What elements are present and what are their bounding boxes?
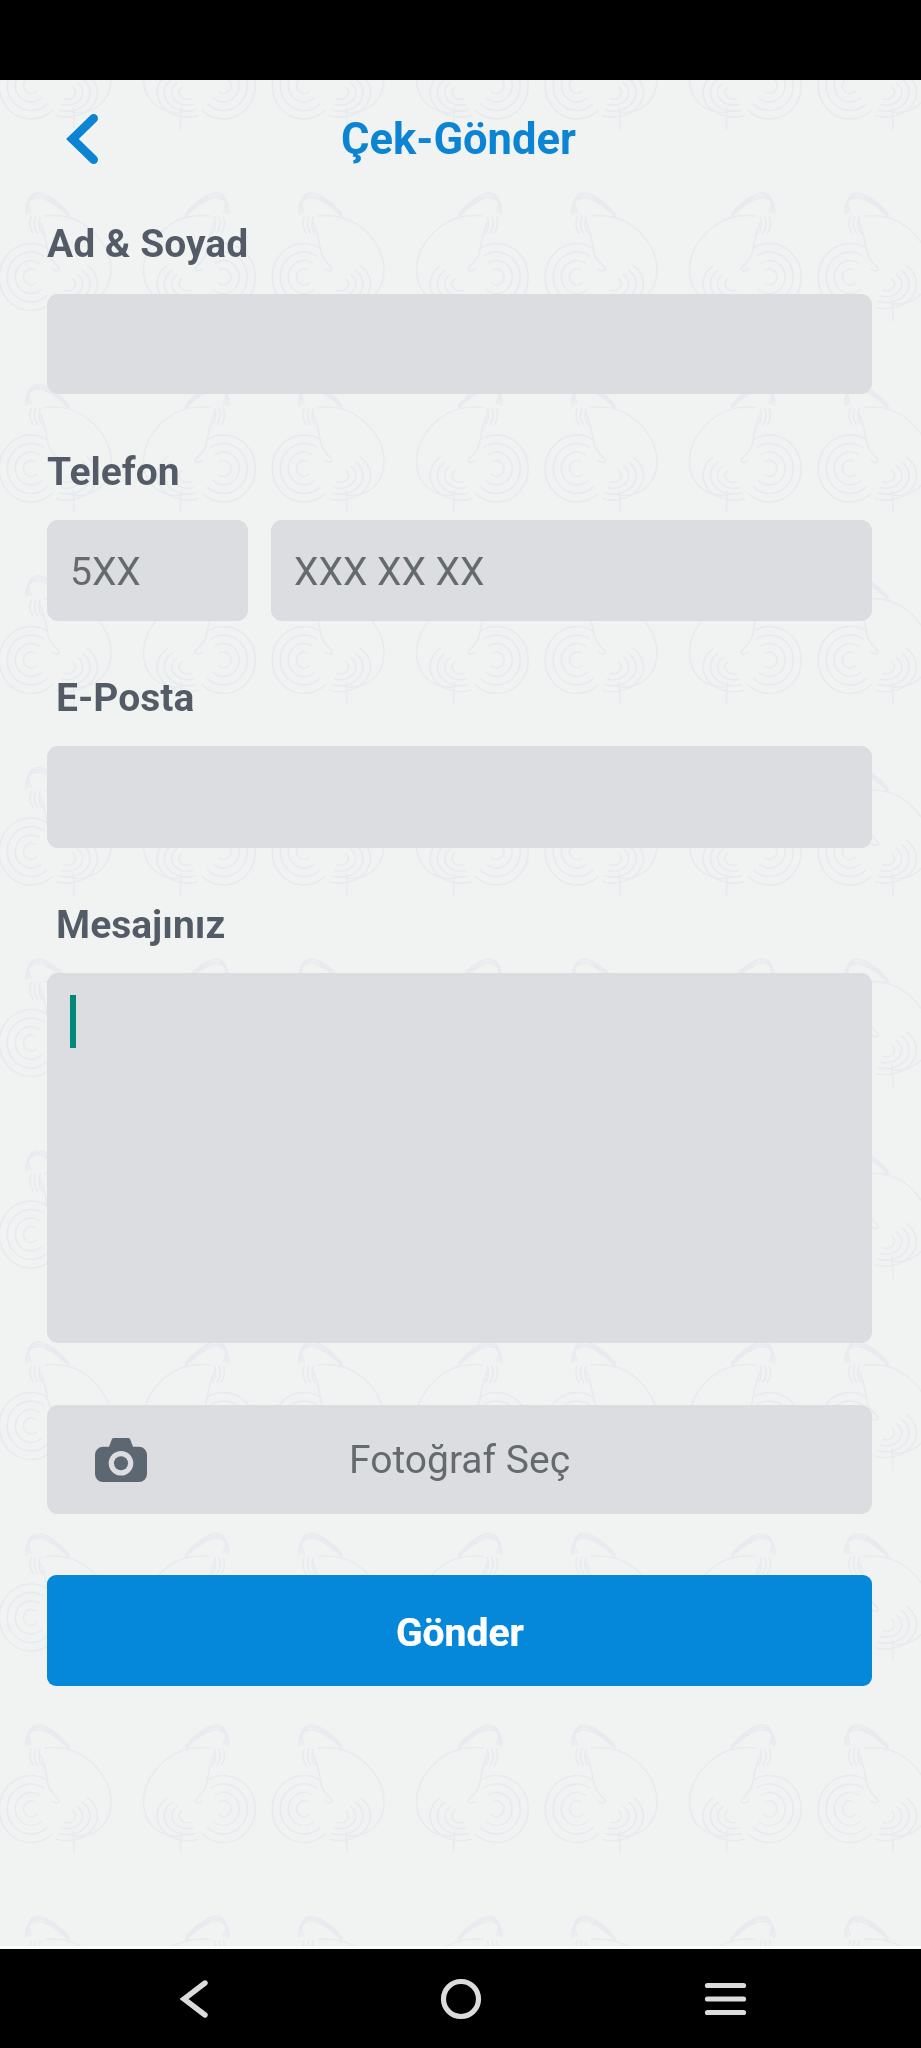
button[interactable]: XXX XX XX — [271, 520, 872, 621]
button[interactable]: Fotoğraf Seç — [47, 1405, 872, 1514]
staticText: Ad & Soyad — [47, 221, 249, 267]
button[interactable]: Home — [411, 1949, 511, 2048]
button[interactable]: Recent apps — [675, 1949, 775, 2048]
button[interactable]: 5XX — [47, 520, 248, 621]
button[interactable]: Back — [144, 1949, 244, 2048]
button[interactable] — [47, 973, 872, 1343]
button[interactable]: Gönder — [47, 1575, 872, 1686]
staticText: Gönder — [396, 1610, 524, 1656]
staticText: XXX XX XX — [294, 549, 485, 595]
staticText: E-Posta — [56, 675, 195, 721]
staticText: 5XX — [70, 549, 141, 595]
staticText: Çek-Gönder — [0, 114, 918, 165]
staticText: Mesajınız — [56, 902, 226, 948]
button[interactable]: Back — [41, 106, 121, 172]
staticText: Fotoğraf Seç — [349, 1437, 571, 1483]
staticText: Telefon — [47, 449, 180, 495]
